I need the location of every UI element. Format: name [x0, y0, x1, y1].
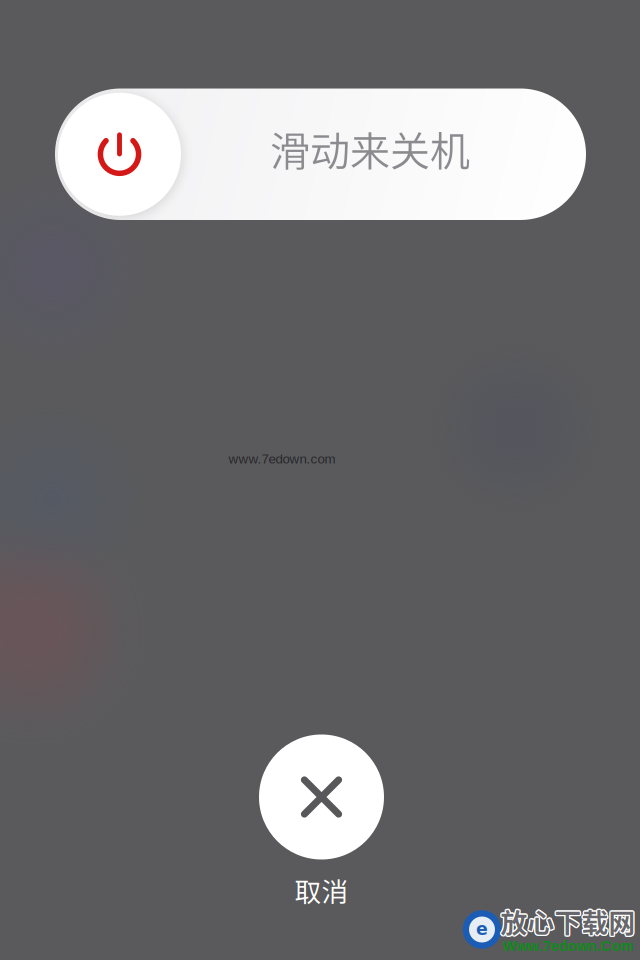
staticText: e: [476, 919, 488, 939]
staticText: www.7edown.com: [228, 452, 335, 466]
staticText: 滑动来关机: [270, 119, 470, 177]
staticText: 取消: [294, 871, 348, 909]
button[interactable]: 滑动来关机: [55, 88, 586, 220]
button[interactable]: 取消: [241, 727, 401, 917]
staticText: Www.7edown.Com: [502, 938, 633, 954]
staticText: 放心下载网: [500, 902, 635, 940]
